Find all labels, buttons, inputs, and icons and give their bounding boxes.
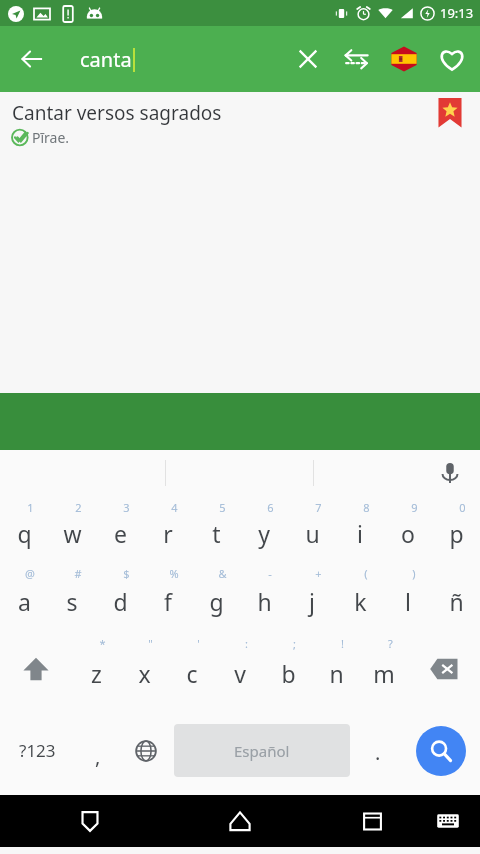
button[interactable]: Backspace <box>408 632 480 706</box>
staticText: Cantar versos sagrados <box>12 100 222 126</box>
staticText: p <box>449 518 464 549</box>
button[interactable]: Clear <box>284 35 332 83</box>
staticText: l <box>405 586 411 617</box>
button[interactable]: @ <box>0 562 48 632</box>
button[interactable]: 5 <box>192 496 240 562</box>
staticText: g <box>209 586 224 617</box>
button[interactable]: Swap translation direction <box>332 35 380 83</box>
button[interactable]: % <box>144 562 192 632</box>
staticText: z <box>91 658 102 689</box>
staticText: w <box>63 518 82 549</box>
staticText: 19:13 <box>440 4 474 22</box>
staticText: 0 <box>459 500 466 515</box>
staticText: ñ <box>449 586 464 617</box>
staticText: ; <box>293 636 296 651</box>
staticText: s <box>66 586 78 617</box>
staticText: 6 <box>267 500 274 515</box>
staticText: h <box>257 586 272 617</box>
button[interactable]: Keyboard visible <box>430 803 466 839</box>
button[interactable]: 2 <box>48 496 96 562</box>
staticText: ! <box>341 636 344 651</box>
button[interactable]: Back <box>70 801 110 841</box>
button[interactable]: Search <box>416 726 466 776</box>
staticText: k <box>354 586 367 617</box>
button[interactable]: 9 <box>384 496 432 562</box>
staticText: canta <box>80 46 132 73</box>
button[interactable]: * <box>72 632 120 706</box>
staticText: ?123 <box>19 739 56 762</box>
button[interactable]: ) <box>384 562 432 632</box>
staticText: x <box>138 658 151 689</box>
staticText: b <box>281 658 296 689</box>
staticText: ( <box>364 566 368 581</box>
staticText: 1 <box>27 500 34 515</box>
button[interactable]: Language: Spanish <box>380 35 428 83</box>
button[interactable]: ! <box>312 632 360 706</box>
button[interactable]: & <box>192 562 240 632</box>
staticText: i <box>357 518 363 549</box>
staticText: u <box>305 518 320 549</box>
button[interactable]: Recents <box>352 801 392 841</box>
staticText: 7 <box>315 500 322 515</box>
button[interactable]: " <box>120 632 168 706</box>
button[interactable]: , <box>74 706 122 795</box>
button[interactable]: Cantar versos sagrados <box>12 100 386 147</box>
staticText: 2 <box>75 500 82 515</box>
button[interactable]: Home <box>220 801 260 841</box>
staticText: ) <box>412 566 416 581</box>
staticText: $ <box>123 566 130 581</box>
staticText: Español <box>234 741 290 761</box>
button[interactable]: ? <box>360 632 408 706</box>
staticText: Pīrae. <box>32 128 70 147</box>
button[interactable]: + <box>288 562 336 632</box>
staticText: & <box>218 566 227 581</box>
button[interactable]: 1 <box>0 496 48 562</box>
staticText: d <box>113 586 128 617</box>
staticText: 8 <box>363 500 370 515</box>
button[interactable]: Voice input <box>430 453 470 493</box>
staticText: a <box>18 586 31 617</box>
button[interactable]: . <box>354 706 402 795</box>
button[interactable]: 6 <box>240 496 288 562</box>
button[interactable]: 7 <box>288 496 336 562</box>
button[interactable]: - <box>240 562 288 632</box>
staticText: @ <box>25 566 35 581</box>
staticText: t <box>212 518 221 549</box>
staticText: e <box>114 518 127 549</box>
staticText: " <box>148 636 153 651</box>
button[interactable]: 0 <box>432 496 480 562</box>
staticText: # <box>74 566 82 581</box>
button[interactable]: Change language <box>122 706 170 795</box>
button[interactable]: ?123 <box>0 706 74 795</box>
staticText: j <box>309 586 315 617</box>
staticText: v <box>234 658 246 689</box>
staticText: n <box>329 658 344 689</box>
staticText: ? <box>388 636 393 651</box>
button[interactable]: Español <box>174 724 350 777</box>
staticText: , <box>95 743 101 770</box>
staticText: . <box>375 739 381 766</box>
staticText: - <box>268 566 272 581</box>
staticText: 3 <box>123 500 130 515</box>
staticText: c <box>186 658 198 689</box>
button[interactable]: ; <box>264 632 312 706</box>
button[interactable]: ( <box>336 562 384 632</box>
staticText: r <box>163 518 173 549</box>
button[interactable]: 4 <box>144 496 192 562</box>
staticText: y <box>258 518 270 549</box>
button[interactable]: Favorites <box>428 35 476 83</box>
button[interactable]: Shift <box>0 632 72 706</box>
button[interactable]: 3 <box>96 496 144 562</box>
button[interactable]: ' <box>168 632 216 706</box>
button[interactable]: 8 <box>336 496 384 562</box>
button[interactable]: Bookmark <box>434 98 466 130</box>
staticText: o <box>401 518 415 549</box>
button[interactable]: $ <box>96 562 144 632</box>
button[interactable]: : <box>216 632 264 706</box>
button[interactable]: # <box>48 562 96 632</box>
button[interactable]: Back <box>8 35 56 83</box>
staticText: q <box>17 518 32 549</box>
button[interactable]: ñ <box>432 562 480 632</box>
staticText: * <box>99 636 106 651</box>
